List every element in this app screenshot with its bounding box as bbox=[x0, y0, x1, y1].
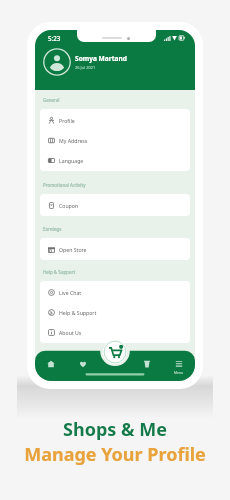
staticText: Live Chat bbox=[59, 289, 82, 296]
staticText: 26 Jul 2021 bbox=[75, 65, 96, 70]
button[interactable]: Favorites bbox=[73, 360, 93, 368]
button[interactable]: Cart bbox=[103, 340, 127, 364]
button[interactable]: About Us bbox=[40, 322, 190, 342]
staticText: Shops & Me bbox=[63, 417, 167, 442]
staticText: General bbox=[43, 97, 60, 103]
button[interactable]: Orders bbox=[137, 360, 157, 368]
button[interactable]: Profile bbox=[40, 110, 190, 130]
button[interactable]: Language bbox=[40, 150, 190, 170]
button[interactable]: Coupon bbox=[40, 195, 190, 215]
button[interactable]: Home bbox=[41, 360, 61, 368]
staticText: About Us bbox=[59, 329, 82, 336]
staticText: Help & Support bbox=[59, 309, 97, 316]
button[interactable]: Help & Support bbox=[40, 302, 190, 322]
button[interactable]: My Address bbox=[40, 130, 190, 150]
button[interactable]: Live Chat bbox=[40, 282, 190, 302]
staticText: 5:23 bbox=[48, 34, 61, 42]
staticText: Earnings bbox=[43, 226, 62, 232]
staticText: Help & Support bbox=[43, 269, 76, 275]
staticText: My Address bbox=[59, 137, 88, 144]
staticText: Promotional Activity bbox=[43, 182, 86, 188]
staticText: Menu bbox=[174, 370, 184, 375]
button[interactable]: Open Store bbox=[40, 239, 190, 259]
staticText: Profile bbox=[59, 117, 75, 124]
staticText: Manage Your Profile bbox=[24, 442, 206, 467]
staticText: Language bbox=[59, 157, 84, 164]
staticText: Open Store bbox=[59, 246, 87, 253]
staticText: Somya Martand bbox=[75, 54, 127, 63]
button[interactable]: Menu bbox=[169, 360, 189, 375]
staticText: Coupon bbox=[59, 202, 79, 209]
